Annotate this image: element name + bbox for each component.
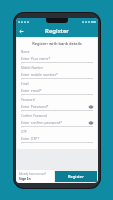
- staticText: Register: [45, 27, 69, 35]
- staticText: Already have account?: [19, 172, 47, 176]
- staticText: Enter Password*: [21, 104, 88, 109]
- button[interactable]: Show password: [88, 120, 93, 125]
- staticText: Enter mobile number*: [21, 72, 93, 77]
- staticText: Register: [68, 174, 84, 179]
- staticText: Confirm Password: [21, 114, 47, 118]
- button[interactable]: Already have account?: [16, 170, 54, 183]
- button[interactable]: Show password: [88, 104, 93, 109]
- button[interactable]: Mobile Number: [21, 66, 93, 82]
- staticText: Enter email*: [21, 88, 93, 93]
- staticText: Password: [21, 98, 35, 102]
- button[interactable]: Register: [55, 171, 97, 182]
- staticText: Mobile Number: [21, 66, 44, 70]
- staticText: Email: [21, 82, 29, 86]
- staticText: Enter Your name*: [21, 56, 93, 61]
- staticText: Register with bank details: [21, 41, 93, 46]
- staticText: Sign In: [19, 176, 31, 181]
- button[interactable]: Email: [21, 82, 93, 98]
- button[interactable]: OTP: [21, 130, 93, 146]
- button[interactable]: Password: [21, 98, 93, 114]
- staticText: Name: [21, 50, 30, 54]
- button[interactable]: Name: [21, 50, 93, 66]
- staticText: Enter OTP*: [21, 136, 93, 141]
- staticText: Enter confirm password*: [21, 120, 88, 125]
- button[interactable]: Confirm Password: [21, 114, 93, 130]
- button[interactable]: Back: [16, 26, 26, 36]
- staticText: OTP: [21, 130, 27, 134]
